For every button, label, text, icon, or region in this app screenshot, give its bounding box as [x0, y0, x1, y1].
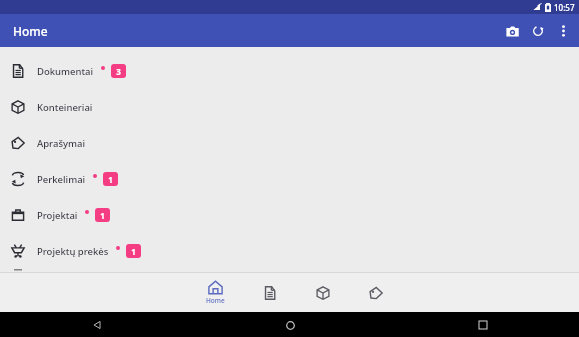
staticText: 10:57: [554, 2, 575, 13]
button[interactable]: Documents: [243, 273, 296, 312]
button[interactable]: Refresh: [525, 18, 551, 44]
staticText: Dokumentai: [37, 65, 94, 78]
button[interactable]: Containers: [296, 273, 349, 312]
staticText: Projektų prekės: [37, 245, 109, 258]
button[interactable]: Konteineriai: [0, 89, 579, 125]
staticText: 1: [108, 174, 113, 185]
button[interactable]: Dokumentai: [0, 53, 579, 89]
button[interactable]: Descriptions: [349, 273, 402, 312]
button[interactable]: More options: [551, 19, 575, 43]
button[interactable]: Projektų prekės: [0, 233, 579, 269]
button[interactable]: Back: [86, 314, 108, 336]
button[interactable]: Recents: [472, 314, 494, 336]
staticText: Aprašymai: [37, 137, 86, 150]
button[interactable]: Home: [279, 314, 301, 336]
button[interactable]: Aprašymai: [0, 125, 579, 161]
staticText: Home: [13, 23, 48, 39]
staticText: Home: [206, 296, 225, 305]
staticText: Projektai: [37, 209, 78, 222]
button[interactable]: Projektai: [0, 197, 579, 233]
staticText: Perkelimai: [37, 173, 86, 186]
staticText: 3: [116, 66, 121, 77]
button[interactable]: Home: [188, 273, 243, 312]
staticText: 1: [131, 246, 136, 257]
button[interactable]: Perkelimai: [0, 161, 579, 197]
button[interactable]: Camera: [499, 18, 525, 44]
staticText: 1: [100, 210, 105, 221]
staticText: Konteineriai: [37, 101, 93, 114]
